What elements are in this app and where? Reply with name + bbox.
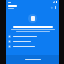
button[interactable] — [8, 35, 57, 38]
button[interactable] — [8, 40, 57, 43]
button[interactable]: More options — [54, 6, 57, 9]
button[interactable] — [8, 45, 57, 48]
button[interactable]: Search — [50, 6, 53, 9]
